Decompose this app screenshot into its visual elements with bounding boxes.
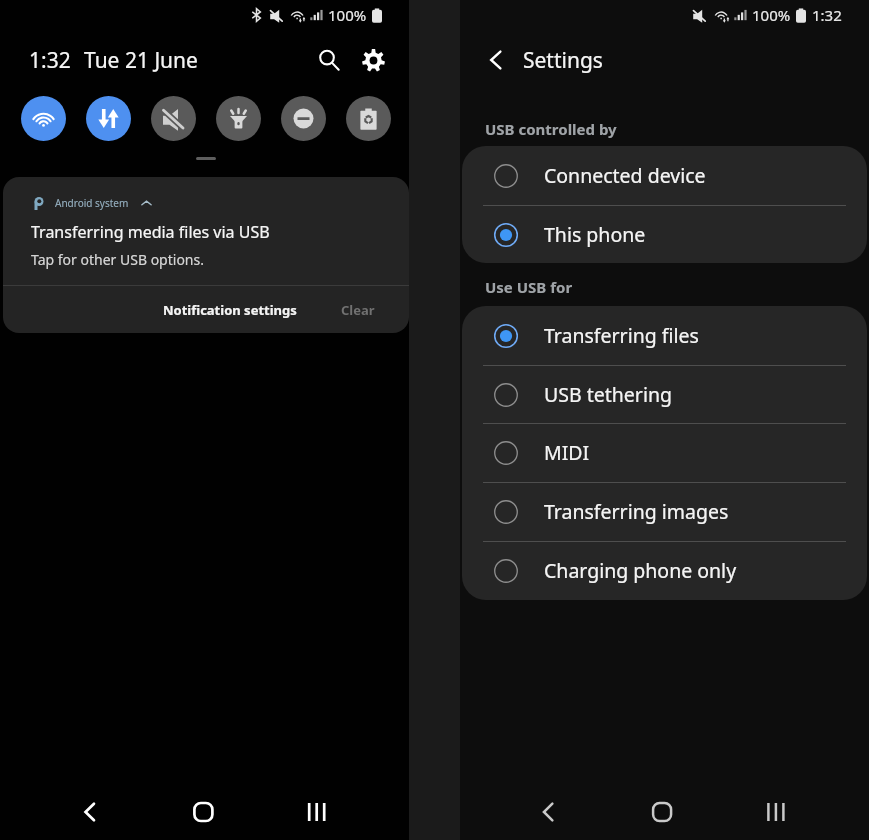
- button[interactable]: Recent apps: [752, 790, 796, 834]
- staticText: MIDI: [544, 439, 590, 466]
- button[interactable]: Transferring files: [462, 306, 867, 365]
- button[interactable]: Android system: [3, 177, 409, 333]
- staticText: Clear: [341, 301, 375, 319]
- staticText: This phone: [544, 221, 646, 248]
- button[interactable]: Power saving: [346, 96, 391, 141]
- staticText: 1:32: [812, 5, 842, 25]
- staticText: Transferring images: [544, 498, 729, 525]
- staticText: Notification settings: [163, 301, 297, 319]
- button[interactable]: Wi-Fi: [21, 96, 66, 141]
- staticText: Use USB for: [485, 277, 573, 297]
- staticText: 100%: [328, 5, 367, 25]
- button[interactable]: Home: [638, 790, 682, 834]
- button[interactable]: Back: [474, 38, 518, 82]
- button[interactable]: Back: [523, 790, 567, 834]
- button[interactable]: Recent apps: [293, 790, 337, 834]
- button[interactable]: Settings: [355, 44, 391, 76]
- staticText: 100%: [752, 5, 791, 25]
- button[interactable]: Home: [179, 790, 223, 834]
- staticText: USB controlled by: [485, 119, 617, 139]
- staticText: Transferring files: [544, 322, 699, 349]
- staticText: Charging phone only: [544, 557, 737, 584]
- button[interactable]: MIDI: [462, 423, 867, 482]
- staticText: Settings: [523, 46, 603, 75]
- staticText: Android system: [55, 196, 129, 210]
- button[interactable]: Transferring images: [462, 482, 867, 541]
- staticText: Tue 21 June: [84, 46, 198, 75]
- button[interactable]: Search: [311, 44, 347, 76]
- button[interactable]: Notification settings: [153, 293, 307, 327]
- button[interactable]: Charging phone only: [462, 541, 867, 600]
- button[interactable]: Connected device: [462, 146, 867, 205]
- button[interactable]: Back: [65, 790, 109, 834]
- button[interactable]: USB tethering: [462, 365, 867, 424]
- button[interactable]: Mobile data: [86, 96, 131, 141]
- button[interactable]: Do not disturb: [281, 96, 326, 141]
- staticText: Tap for other USB options.: [31, 250, 204, 269]
- staticText: 1:32: [29, 46, 71, 75]
- staticText: Connected device: [544, 162, 706, 189]
- button[interactable]: Clear: [331, 293, 385, 327]
- staticText: USB tethering: [544, 381, 672, 408]
- staticText: Transferring media files via USB: [31, 221, 270, 243]
- button[interactable]: Flashlight: [216, 96, 261, 141]
- button[interactable]: This phone: [462, 205, 867, 263]
- button[interactable]: Sound off: [151, 96, 196, 141]
